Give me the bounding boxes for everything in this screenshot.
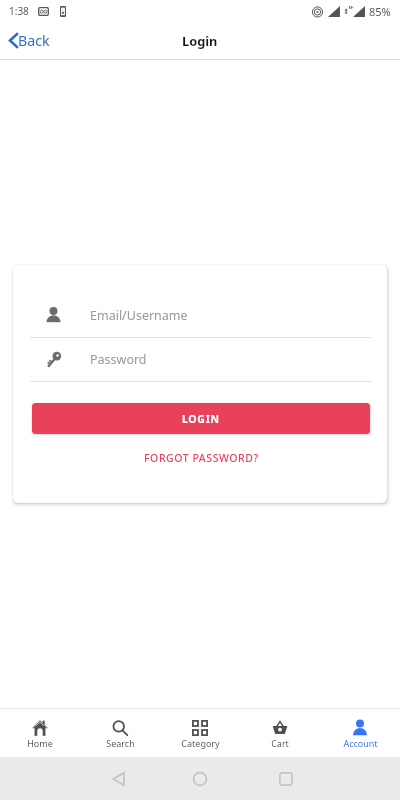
staticText: LOGIN	[182, 412, 220, 426]
button[interactable]: FORGOT PASSWORD?	[30, 446, 372, 470]
staticText: Home	[27, 737, 53, 749]
button[interactable]: Back	[98, 759, 138, 799]
button[interactable]: Cart	[240, 709, 320, 757]
staticText: Email/Username	[90, 307, 188, 324]
staticText: 1:38	[9, 4, 29, 18]
button[interactable]: Home	[180, 759, 220, 799]
staticText: Back	[18, 31, 50, 50]
button[interactable]: LOGIN	[32, 403, 370, 434]
button[interactable]: Recent apps	[266, 759, 306, 799]
staticText: Category	[181, 737, 220, 749]
button[interactable]: Home	[0, 709, 80, 757]
button[interactable]: Back	[0, 22, 60, 59]
button[interactable]: Email/Username	[30, 294, 372, 337]
staticText: Search	[106, 737, 135, 749]
staticText: 85%	[369, 4, 391, 19]
staticText: Account	[343, 737, 378, 749]
button[interactable]: Password	[30, 338, 372, 381]
button[interactable]: Account	[320, 709, 400, 757]
staticText: Cart	[271, 737, 289, 749]
button[interactable]: Search	[80, 709, 160, 757]
staticText: FORGOT PASSWORD?	[144, 451, 259, 465]
staticText: Login	[182, 32, 218, 49]
button[interactable]: Category	[160, 709, 240, 757]
staticText: Password	[90, 351, 147, 368]
